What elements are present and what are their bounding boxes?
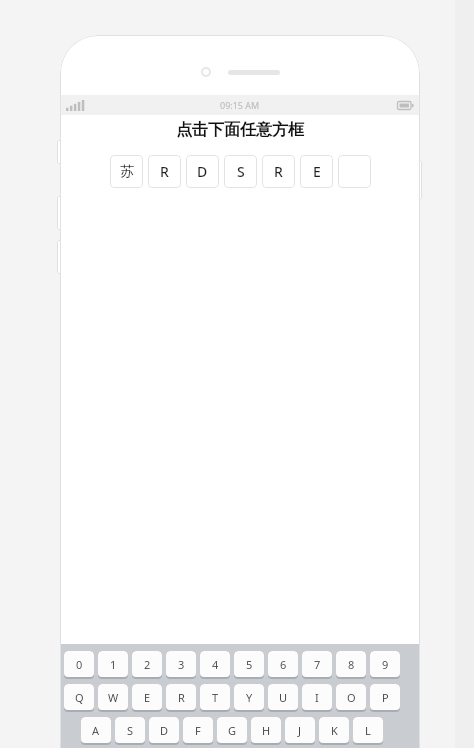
staticText: 6 bbox=[280, 657, 287, 672]
button[interactable]: U bbox=[268, 684, 298, 710]
staticText: 2 bbox=[144, 657, 151, 672]
button[interactable]: Volume up bbox=[57, 196, 62, 230]
button[interactable]: 0 bbox=[64, 651, 94, 677]
staticText: E bbox=[144, 690, 151, 705]
button[interactable]: 7 bbox=[302, 651, 332, 677]
staticText: 3 bbox=[178, 657, 185, 672]
staticText: W bbox=[108, 690, 119, 705]
staticText: R bbox=[178, 690, 185, 705]
staticText: A bbox=[92, 723, 100, 738]
staticText: F bbox=[195, 723, 201, 738]
staticText: J bbox=[298, 723, 302, 738]
staticText: K bbox=[331, 723, 338, 738]
button[interactable]: Power bbox=[417, 160, 422, 200]
staticText: P bbox=[382, 690, 389, 705]
staticText: T bbox=[212, 690, 219, 705]
button[interactable]: K bbox=[319, 717, 349, 743]
button[interactable]: P bbox=[370, 684, 400, 710]
staticText: 8 bbox=[348, 657, 355, 672]
button[interactable]: L bbox=[353, 717, 383, 743]
button[interactable]: R bbox=[262, 155, 295, 188]
staticText: E bbox=[313, 162, 321, 181]
staticText: O bbox=[347, 690, 356, 705]
staticText: R bbox=[274, 162, 283, 181]
button[interactable]: F bbox=[183, 717, 213, 743]
button[interactable]: H bbox=[251, 717, 281, 743]
staticText: 5 bbox=[246, 657, 253, 672]
button[interactable]: R bbox=[166, 684, 196, 710]
button[interactable]: 9 bbox=[370, 651, 400, 677]
button[interactable]: E bbox=[300, 155, 333, 188]
button[interactable]: 8 bbox=[336, 651, 366, 677]
staticText: H bbox=[262, 723, 271, 738]
button[interactable]: I bbox=[302, 684, 332, 710]
button[interactable]: S bbox=[224, 155, 257, 188]
staticText: Q bbox=[75, 690, 84, 705]
staticText: S bbox=[127, 723, 134, 738]
staticText: 09:15 AM bbox=[220, 99, 260, 111]
button[interactable]: Y bbox=[234, 684, 264, 710]
staticText: 1 bbox=[110, 657, 117, 672]
staticText: U bbox=[279, 690, 288, 705]
staticText: G bbox=[228, 723, 237, 738]
button[interactable]: A bbox=[81, 717, 111, 743]
button[interactable]: 2 bbox=[132, 651, 162, 677]
button[interactable]: Silent switch bbox=[57, 140, 62, 164]
button[interactable]: D bbox=[186, 155, 219, 188]
button[interactable]: S bbox=[115, 717, 145, 743]
staticText: 0 bbox=[76, 657, 83, 672]
staticText: Y bbox=[246, 690, 253, 705]
staticText: 4 bbox=[212, 657, 219, 672]
button[interactable]: 4 bbox=[200, 651, 230, 677]
button[interactable]: D bbox=[149, 717, 179, 743]
button[interactable]: Q bbox=[64, 684, 94, 710]
button[interactable]: J bbox=[285, 717, 315, 743]
button[interactable]: Volume down bbox=[57, 240, 62, 274]
staticText: 点击下面任意方框 bbox=[68, 120, 412, 140]
staticText: D bbox=[197, 162, 208, 181]
staticText: 9 bbox=[382, 657, 389, 672]
button[interactable]: E bbox=[132, 684, 162, 710]
button[interactable]: G bbox=[217, 717, 247, 743]
button[interactable]: O bbox=[336, 684, 366, 710]
button[interactable]: 苏 bbox=[110, 155, 143, 188]
button[interactable]: 3 bbox=[166, 651, 196, 677]
staticText: D bbox=[160, 723, 169, 738]
button[interactable]: Empty input box bbox=[338, 155, 371, 188]
staticText: I bbox=[315, 690, 319, 705]
staticText: S bbox=[237, 162, 245, 181]
button[interactable]: 5 bbox=[234, 651, 264, 677]
button[interactable]: 6 bbox=[268, 651, 298, 677]
staticText: R bbox=[160, 162, 169, 181]
staticText: 7 bbox=[314, 657, 321, 672]
button[interactable]: W bbox=[98, 684, 128, 710]
staticText: L bbox=[365, 723, 371, 738]
button[interactable]: T bbox=[200, 684, 230, 710]
staticText: 苏 bbox=[120, 163, 134, 181]
button[interactable]: R bbox=[148, 155, 181, 188]
button[interactable]: 1 bbox=[98, 651, 128, 677]
